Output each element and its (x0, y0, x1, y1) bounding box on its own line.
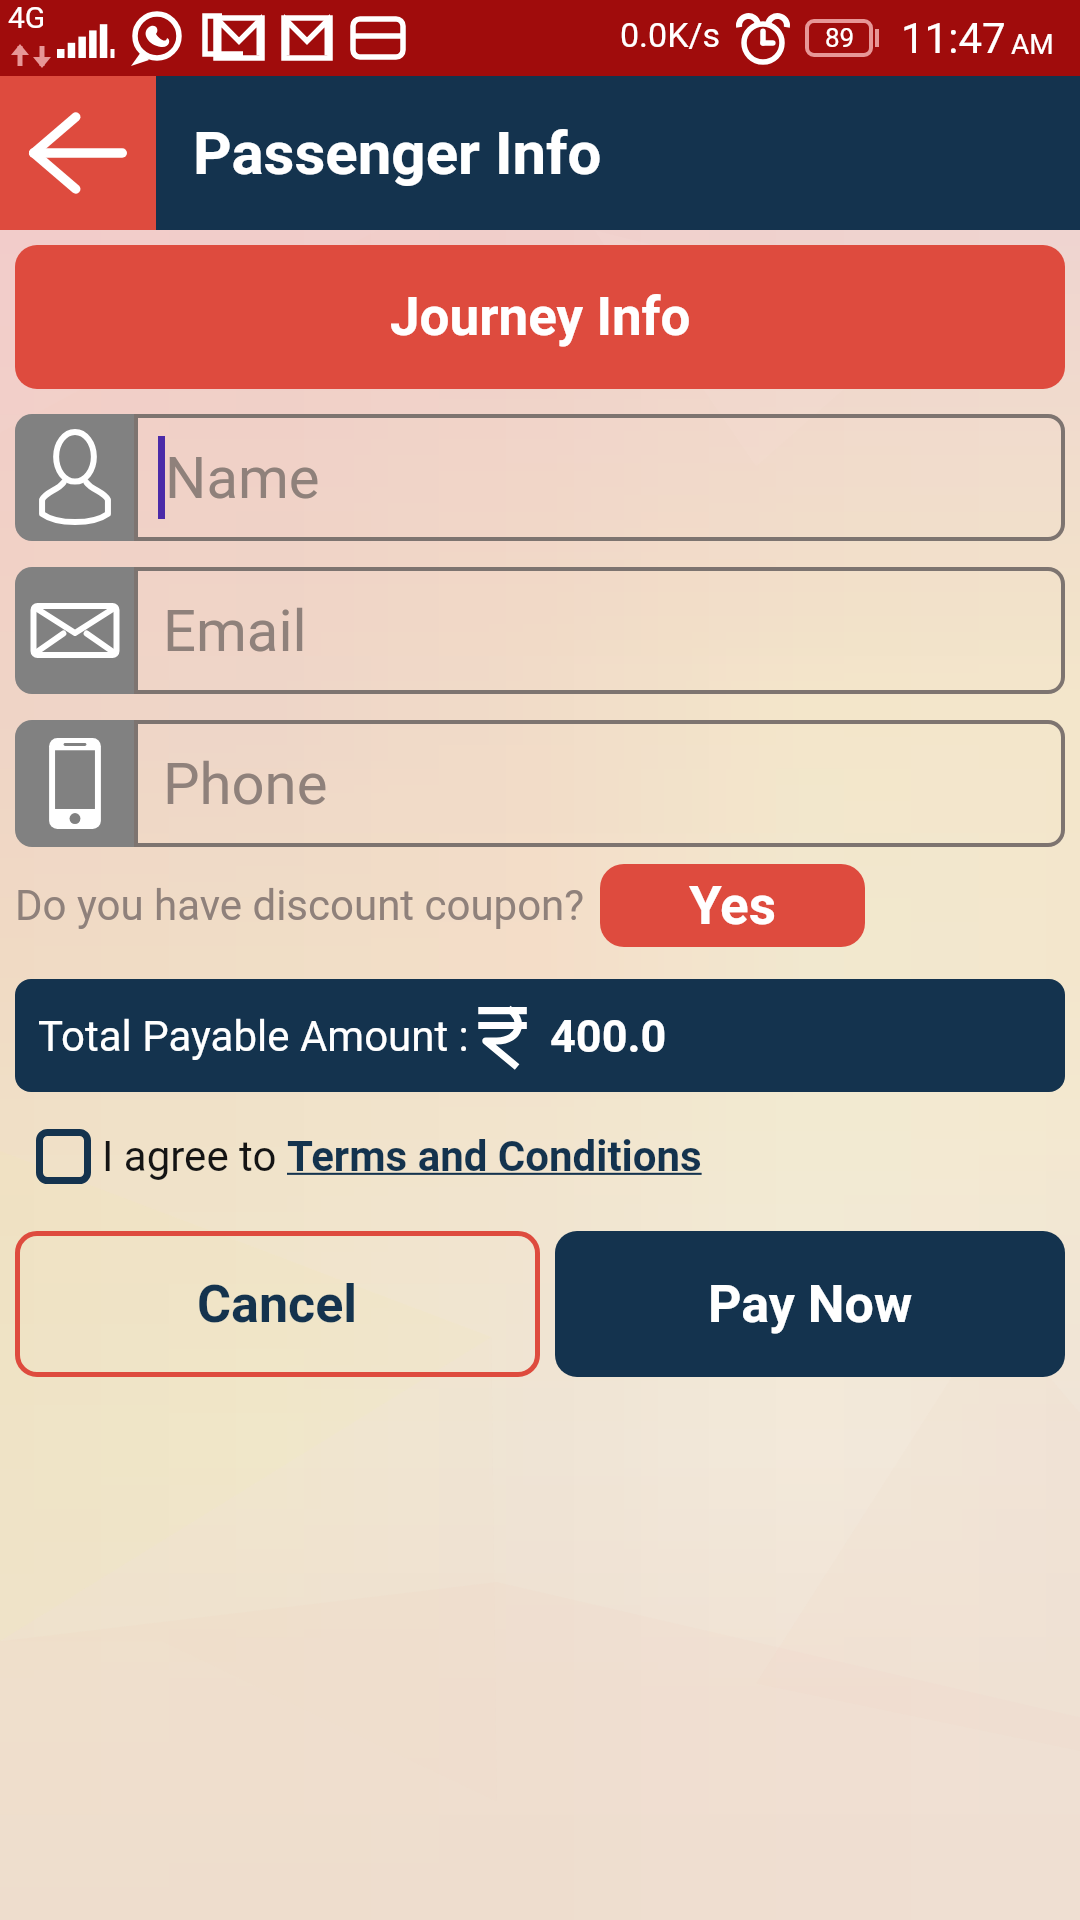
staticText: Journey Info (390, 286, 691, 348)
staticText: Phone (163, 750, 328, 818)
staticText: I agree to (102, 1132, 287, 1181)
staticText: 11:47 (901, 14, 1006, 63)
button[interactable]: Pay Now (555, 1231, 1065, 1377)
button[interactable]: Cancel (15, 1231, 540, 1377)
staticText: Yes (689, 875, 777, 937)
button[interactable]: Journey Info (15, 245, 1065, 389)
staticText: Cancel (197, 1274, 358, 1335)
staticText: Total Payable Amount : (38, 1012, 469, 1061)
staticText: Do you have discount coupon? (15, 881, 585, 930)
staticText: Pay Now (708, 1274, 913, 1335)
staticText: Terms and Conditions (287, 1132, 702, 1181)
button[interactable]: I agree to (15, 1128, 1065, 1184)
staticText: 89 (825, 23, 855, 53)
staticText: 4G (8, 0, 46, 35)
button[interactable]: Name (15, 414, 1065, 541)
staticText: Email (163, 597, 307, 665)
staticText: 400.0 (550, 1010, 667, 1063)
staticText: AM (1011, 28, 1054, 61)
button[interactable]: Back (0, 76, 156, 230)
staticText: 0.0K/s (620, 15, 721, 55)
button[interactable]: Phone (15, 720, 1065, 847)
button[interactable]: Yes (600, 864, 865, 947)
staticText: Name (165, 444, 320, 512)
button[interactable]: Email (15, 567, 1065, 694)
staticText: Passenger Info (193, 118, 602, 188)
